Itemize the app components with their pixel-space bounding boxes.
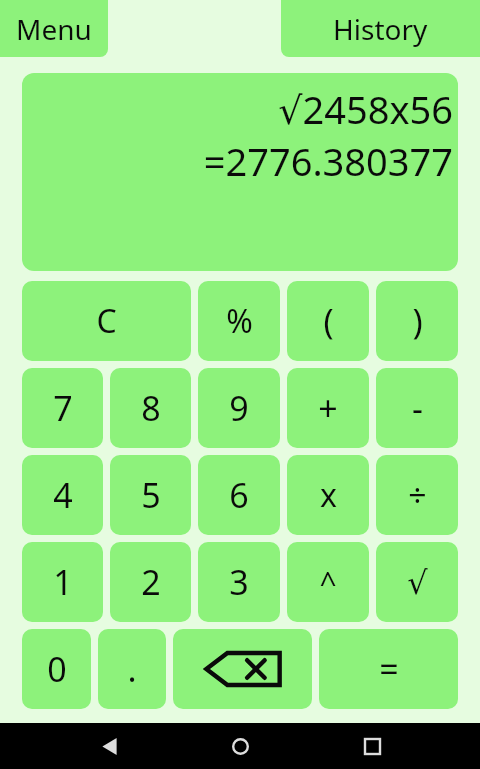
button[interactable]: √ <box>376 542 458 622</box>
button[interactable]: 7 <box>22 368 103 448</box>
button[interactable]: 5 <box>110 455 191 535</box>
staticText: 5 <box>141 472 161 518</box>
button[interactable]: 2 <box>110 542 191 622</box>
staticText: 1 <box>53 559 73 605</box>
button[interactable]: 6 <box>198 455 280 535</box>
staticText: . <box>127 646 137 692</box>
staticText: 2 <box>141 559 161 605</box>
staticText: √ <box>407 564 428 601</box>
staticText: √2458x56 <box>278 83 453 135</box>
staticText: C <box>96 299 117 343</box>
staticText: 8 <box>141 385 161 431</box>
staticText: 3 <box>229 559 249 605</box>
staticText: % <box>226 299 253 343</box>
staticText: ^ <box>319 562 337 603</box>
staticText: 6 <box>229 472 249 518</box>
staticText: ÷ <box>408 473 427 517</box>
button[interactable]: + <box>287 368 369 448</box>
button[interactable]: Home <box>217 723 263 769</box>
button[interactable]: = <box>319 629 458 709</box>
staticText: x <box>320 473 337 517</box>
button[interactable]: ( <box>287 281 369 361</box>
button[interactable]: Backspace <box>173 629 312 709</box>
button[interactable]: . <box>98 629 166 709</box>
button[interactable]: ^ <box>287 542 369 622</box>
button[interactable]: 3 <box>198 542 280 622</box>
staticText: History <box>333 10 428 48</box>
staticText: =2776.380377 <box>203 135 453 187</box>
staticText: ) <box>412 298 423 344</box>
button[interactable]: x <box>287 455 369 535</box>
button[interactable]: Menu <box>0 0 108 57</box>
button[interactable]: ÷ <box>376 455 458 535</box>
button[interactable]: ) <box>376 281 458 361</box>
button[interactable]: C <box>22 281 191 361</box>
staticText: + <box>318 385 338 431</box>
button[interactable]: % <box>198 281 280 361</box>
staticText: 4 <box>53 472 73 518</box>
staticText: - <box>412 385 423 431</box>
staticText: ( <box>323 298 334 344</box>
staticText: 9 <box>229 385 249 431</box>
button[interactable]: 1 <box>22 542 103 622</box>
staticText: 7 <box>53 385 73 431</box>
button[interactable]: Recent apps <box>349 723 395 769</box>
staticText: = <box>379 646 399 692</box>
button[interactable]: 0 <box>22 629 91 709</box>
button[interactable]: History <box>281 0 480 57</box>
button[interactable]: Back <box>86 723 132 769</box>
button[interactable]: 4 <box>22 455 103 535</box>
button[interactable]: 8 <box>110 368 191 448</box>
button[interactable]: 9 <box>198 368 280 448</box>
staticText: 0 <box>47 646 67 692</box>
staticText: Menu <box>16 10 92 48</box>
button[interactable]: - <box>376 368 458 448</box>
